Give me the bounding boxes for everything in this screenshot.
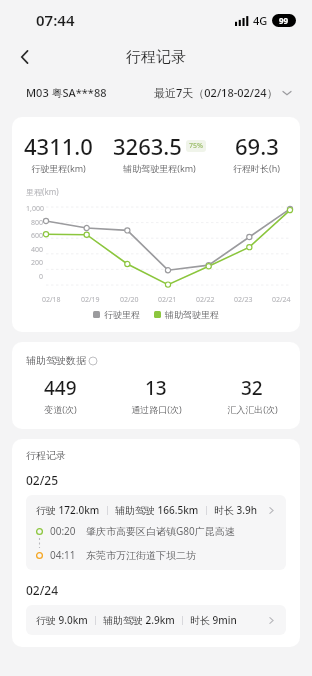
button[interactable]: M03 粤SA***88 (26, 85, 107, 100)
staticText: 600 (31, 231, 44, 241)
staticText: 02/19 (81, 295, 100, 305)
staticText: 07:44 (36, 10, 75, 30)
staticText: 3263.5 (113, 131, 182, 161)
staticText: 变道(次) (44, 403, 77, 415)
staticText: 汇入汇出(次) (227, 403, 278, 415)
staticText: 最近7天（02/18-02/24） (154, 85, 278, 100)
staticText: 行驶里程(km) (31, 162, 86, 174)
staticText: 里程(km) (26, 186, 59, 197)
button[interactable]: 最近7天（02/18-02/24） (154, 85, 292, 100)
button[interactable]: 行驶 9.0km (26, 605, 286, 635)
staticText: 1,000 (26, 204, 44, 214)
staticText: 04:11 (50, 548, 76, 562)
button[interactable]: Back (10, 42, 40, 72)
staticText: 32 (241, 375, 263, 401)
staticText: 时长 3.9h (214, 503, 258, 517)
staticText: 辅助驾驶里程 (165, 309, 219, 320)
staticText: 辅助驾驶里程(km) (123, 162, 196, 174)
staticText: 02/18 (42, 295, 61, 305)
staticText: 02/24 (26, 582, 59, 598)
staticText: 200 (31, 258, 44, 268)
staticText: 辅助驾驶 2.9km (103, 613, 175, 627)
staticText: 800 (31, 218, 44, 228)
staticText: 02/20 (120, 295, 139, 305)
staticText: 4G (253, 13, 268, 28)
staticText: 肇庆市高要区白诸镇G80广昆高速 (86, 524, 235, 538)
staticText: 行程时长(h) (233, 162, 280, 174)
staticText: 辅助驾驶数据 (26, 354, 86, 367)
staticText: 02/21 (158, 295, 177, 305)
staticText: 449 (44, 375, 77, 401)
staticText: 69.3 (235, 131, 279, 161)
staticText: 行驶 172.0km (36, 503, 100, 517)
staticText: 行程记录 (26, 449, 66, 462)
staticText: 行驶 9.0km (36, 613, 88, 627)
staticText: 13 (145, 375, 167, 401)
staticText: 时长 9min (190, 613, 237, 627)
staticText: 99 (279, 15, 289, 26)
staticText: 通过路口(次) (131, 403, 182, 415)
staticText: 02/22 (196, 295, 215, 305)
staticText: 75% (189, 141, 203, 151)
button[interactable]: 行驶 172.0km (26, 495, 286, 570)
staticText: 行驶里程 (104, 309, 140, 320)
staticText: M03 粤SA***88 (26, 85, 107, 100)
staticText: 东莞市万江街道下坝二坊 (86, 549, 196, 562)
staticText: 行程记录 (126, 48, 186, 67)
staticText: 4311.0 (24, 131, 93, 161)
staticText: 02/25 (26, 472, 59, 488)
staticText: 02/23 (234, 295, 253, 305)
staticText: 02/24 (272, 295, 291, 305)
staticText: 00:20 (50, 524, 76, 538)
staticText: 0 (39, 272, 44, 282)
staticText: 辅助驾驶 166.5km (115, 503, 199, 517)
staticText: 400 (31, 245, 44, 255)
